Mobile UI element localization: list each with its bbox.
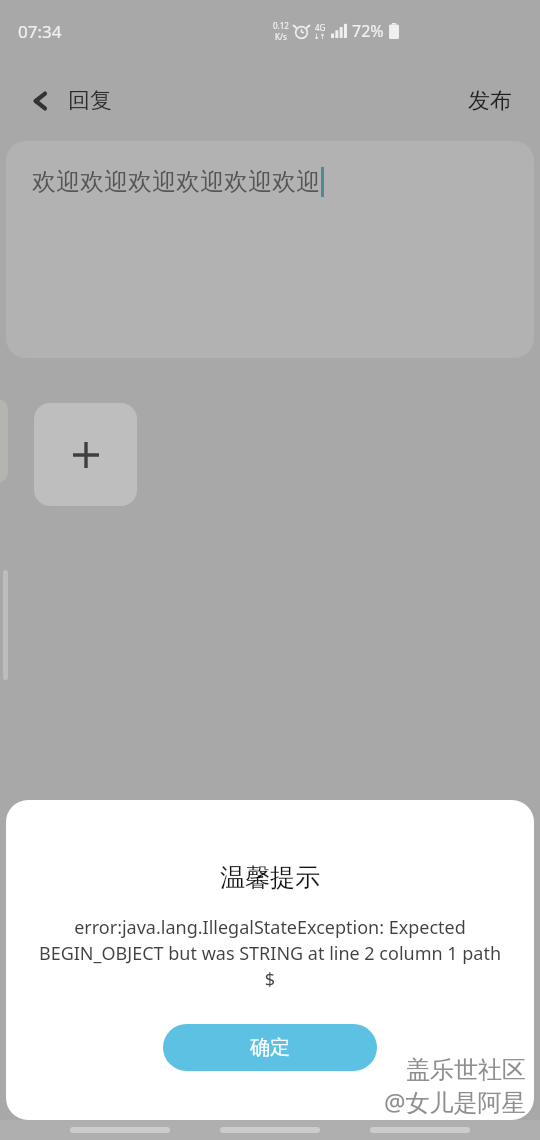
staticText: @女儿是阿星 bbox=[384, 1085, 526, 1118]
button[interactable]: Add image bbox=[34, 403, 137, 506]
staticText: 盖乐世社区 bbox=[406, 1055, 526, 1085]
staticText: 0.12 bbox=[273, 20, 289, 31]
button[interactable]: 确定 bbox=[163, 1024, 377, 1071]
staticText: 确定 bbox=[250, 1035, 290, 1060]
staticText: 72% bbox=[352, 20, 384, 42]
staticText: 欢迎欢迎欢迎欢迎欢迎欢迎 bbox=[32, 167, 320, 197]
staticText: 温馨提示 bbox=[220, 862, 320, 893]
staticText: ↓↑ bbox=[314, 33, 326, 41]
staticText: error:java.lang.IllegalStateException: E… bbox=[38, 915, 502, 992]
staticText: 07:34 bbox=[18, 20, 62, 43]
button[interactable]: 欢迎欢迎欢迎欢迎欢迎欢迎 bbox=[6, 141, 534, 358]
staticText: 4G bbox=[315, 22, 326, 33]
staticText: K/s bbox=[275, 31, 287, 42]
button[interactable]: 发布 bbox=[460, 81, 520, 121]
button[interactable]: 回复 bbox=[22, 81, 120, 121]
staticText: 发布 bbox=[468, 87, 512, 115]
staticText: 回复 bbox=[68, 87, 112, 115]
